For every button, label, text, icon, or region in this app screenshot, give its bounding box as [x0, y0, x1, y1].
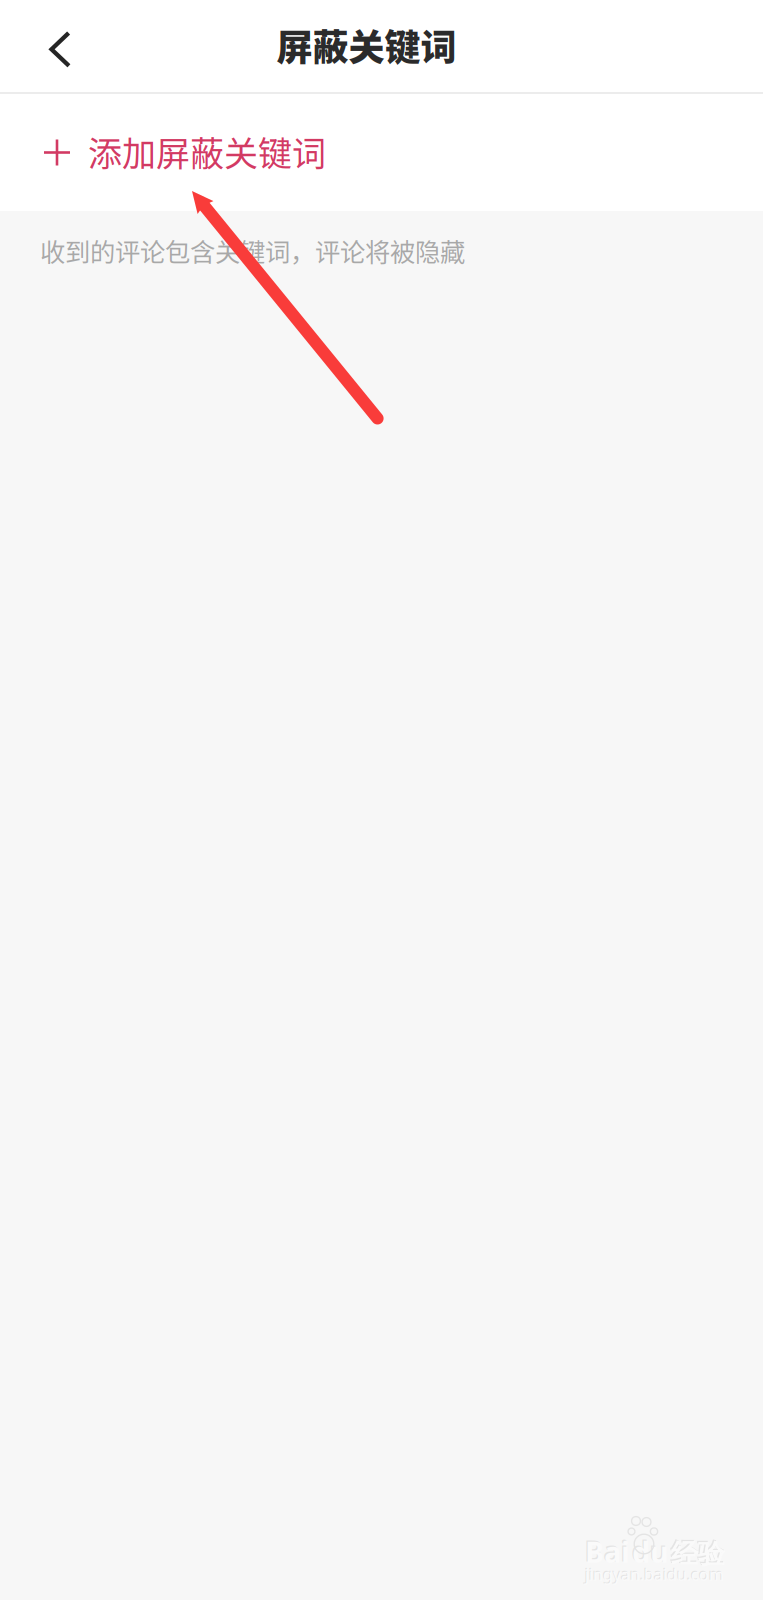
staticText: 收到的评论包含关键词，评论将被隐藏 [40, 232, 465, 269]
staticText: 经验 [671, 1538, 725, 1570]
staticText: Bai [584, 1532, 628, 1569]
button[interactable]: Back [0, 0, 115, 92]
staticText: jingyan.baidu.com [584, 1563, 723, 1584]
staticText: 经验 [670, 1536, 724, 1569]
staticText: du [631, 1532, 667, 1569]
staticText: du [632, 1533, 668, 1570]
button[interactable]: 添加屏蔽关键词 [0, 94, 763, 211]
staticText: 屏蔽关键词 [276, 19, 456, 71]
staticText: jingyan.baidu.com [585, 1564, 724, 1585]
staticText: Bai [585, 1533, 629, 1570]
staticText: 添加屏蔽关键词 [88, 127, 326, 176]
